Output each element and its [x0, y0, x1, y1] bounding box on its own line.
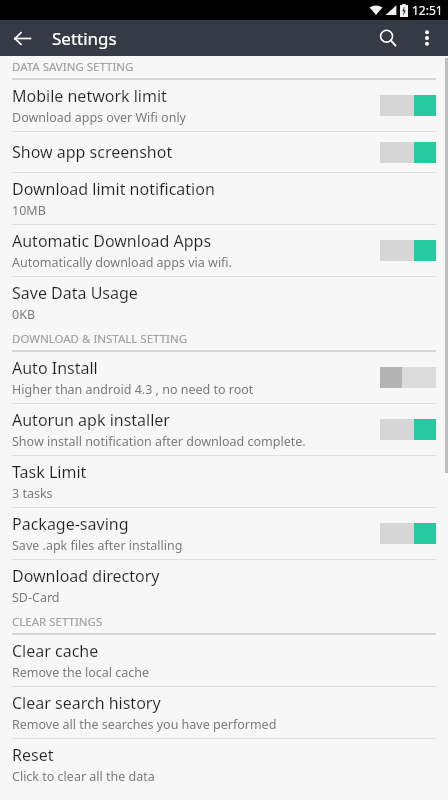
staticText: Auto Install — [12, 357, 98, 379]
button[interactable]: More options — [410, 20, 444, 56]
button[interactable]: Clear search history — [0, 687, 448, 739]
button[interactable]: Toggle on — [380, 95, 436, 116]
staticText: Click to clear all the data — [12, 768, 155, 785]
staticText: Task Limit — [12, 461, 87, 483]
staticText: Remove all the searches you have perform… — [12, 716, 277, 733]
button[interactable]: Toggle off — [380, 367, 436, 388]
staticText: Higher than android 4.3 , no need to roo… — [12, 381, 254, 398]
staticText: Show app screenshot — [12, 141, 173, 163]
button[interactable]: Toggle on — [380, 419, 436, 440]
button[interactable]: Automatic Download Apps — [0, 225, 448, 277]
staticText: Settings — [52, 27, 117, 50]
staticText: DATA SAVING SETTING — [12, 59, 134, 75]
button[interactable]: Autorun apk installer — [0, 404, 448, 456]
button[interactable]: Auto Install — [0, 352, 448, 404]
staticText: Save .apk files after installing — [12, 537, 183, 554]
staticText: Download limit notification — [12, 178, 215, 200]
staticText: 10MB — [12, 202, 46, 219]
button[interactable]: Save Data Usage — [0, 277, 448, 328]
button[interactable]: Reset — [0, 739, 448, 790]
button[interactable]: Toggle on — [380, 240, 436, 261]
button[interactable]: Search — [366, 20, 410, 56]
button[interactable]: Mobile network limit — [0, 80, 448, 132]
staticText: 0KB — [12, 306, 36, 323]
staticText: Show install notification after download… — [12, 433, 306, 450]
button[interactable]: Package-saving — [0, 508, 448, 560]
staticText: Package-saving — [12, 513, 129, 535]
button[interactable]: Download limit notification — [0, 173, 448, 225]
staticText: CLEAR SETTINGS — [12, 614, 103, 630]
staticText: Automatically download apps via wifi. — [12, 254, 232, 271]
staticText: Clear cache — [12, 640, 99, 662]
staticText: Save Data Usage — [12, 282, 138, 304]
button[interactable]: Show app screenshot — [0, 132, 448, 173]
staticText: Clear search history — [12, 692, 161, 714]
staticText: 12:51 — [412, 2, 443, 18]
staticText: Download apps over Wifi only — [12, 109, 186, 126]
staticText: SD-Card — [12, 589, 60, 606]
staticText: Automatic Download Apps — [12, 230, 212, 252]
staticText: Download directory — [12, 565, 160, 587]
button[interactable]: Download directory — [0, 560, 448, 611]
staticText: Reset — [12, 744, 54, 766]
button[interactable]: Toggle on — [380, 142, 436, 163]
staticText: 3 tasks — [12, 485, 53, 502]
button[interactable]: Toggle on — [380, 523, 436, 544]
staticText: Autorun apk installer — [12, 409, 170, 431]
staticText: Remove the local cache — [12, 664, 150, 681]
button[interactable]: Clear cache — [0, 635, 448, 687]
staticText: DOWNLOAD & INSTALL SETTING — [12, 331, 188, 347]
button[interactable]: Task Limit — [0, 456, 448, 508]
staticText: Mobile network limit — [12, 85, 167, 107]
button[interactable]: Back — [0, 20, 44, 56]
